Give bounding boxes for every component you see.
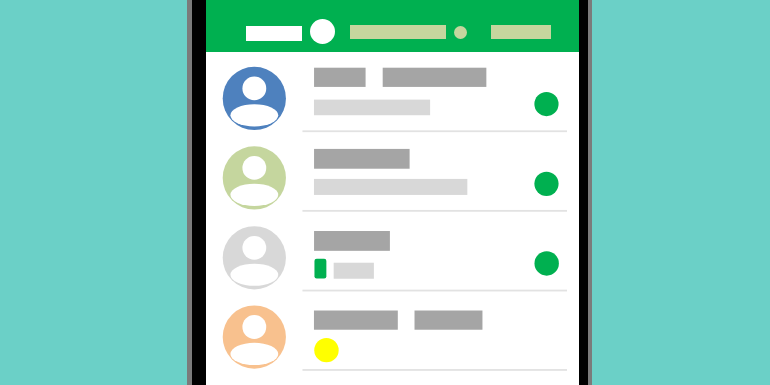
button[interactable]: Contact photo	[206, 52, 579, 132]
button[interactable]: Contact photo	[223, 305, 286, 368]
button[interactable]: Contact photo	[206, 291, 579, 371]
button[interactable]: Contact photo	[206, 132, 579, 212]
button[interactable]: Account	[310, 19, 335, 44]
button[interactable]: More options	[454, 26, 467, 39]
button[interactable]: Contact photo	[206, 212, 579, 291]
button[interactable]: Contact photo	[223, 146, 286, 209]
button[interactable]: Contact photo	[223, 67, 286, 130]
button[interactable]: Contact photo	[223, 226, 286, 289]
